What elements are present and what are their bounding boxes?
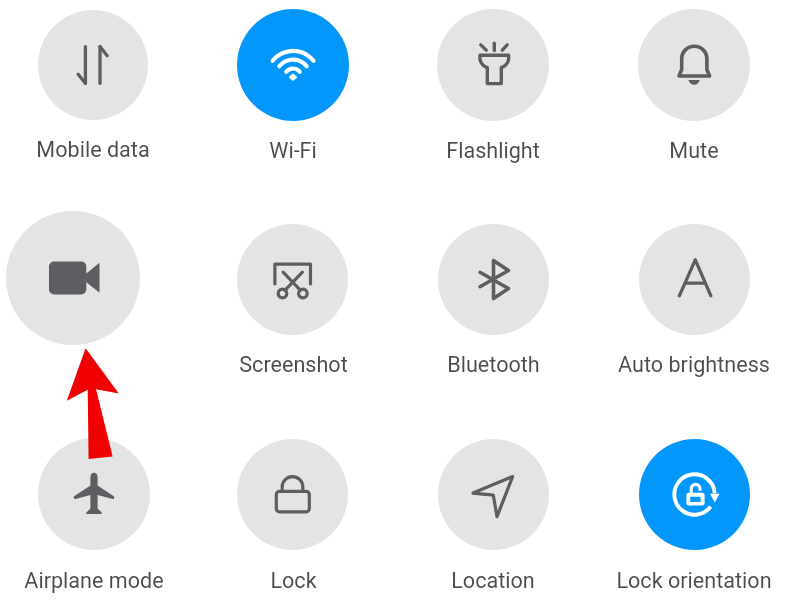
button[interactable]: [38, 438, 150, 550]
staticText: Airplane mode: [24, 568, 164, 593]
button[interactable]: [237, 439, 348, 550]
button[interactable]: Wi-Fi: [163, 138, 423, 163]
button[interactable]: Mute: [564, 138, 788, 163]
button[interactable]: Auto brightness: [564, 352, 788, 377]
staticText: Mute: [669, 138, 719, 163]
button[interactable]: [638, 9, 750, 121]
button[interactable]: Airplane mode: [0, 568, 224, 593]
button[interactable]: [38, 10, 148, 120]
staticText: Location: [451, 568, 535, 593]
staticText: Screenshot: [239, 352, 348, 377]
button[interactable]: [639, 224, 750, 335]
staticText: Wi-Fi: [269, 138, 317, 163]
staticText: Auto brightness: [618, 352, 770, 377]
staticText: Flashlight: [446, 138, 540, 163]
button[interactable]: Bluetooth: [363, 352, 623, 377]
button[interactable]: Screen record: [6, 211, 140, 345]
staticText: Lock: [270, 568, 317, 593]
button[interactable]: Lock: [163, 568, 423, 593]
staticText: Bluetooth: [447, 352, 540, 377]
button[interactable]: Screenshot: [163, 352, 423, 377]
button[interactable]: [639, 439, 750, 550]
button[interactable]: [438, 224, 549, 335]
staticText: Lock orientation: [616, 568, 772, 593]
staticText: Mobile data: [36, 137, 150, 162]
button[interactable]: Location: [363, 568, 623, 593]
button[interactable]: Flashlight: [363, 138, 623, 163]
button[interactable]: [237, 224, 348, 335]
button[interactable]: Lock orientation: [564, 568, 788, 593]
button[interactable]: Mobile data: [0, 137, 223, 162]
button[interactable]: [437, 9, 549, 121]
button[interactable]: [237, 9, 349, 121]
button[interactable]: [438, 439, 549, 550]
